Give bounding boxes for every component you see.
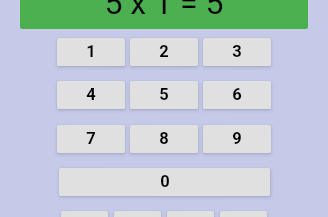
button[interactable]: 2 (130, 38, 198, 66)
button[interactable]: 5 (130, 81, 198, 109)
button[interactable]: 7 (57, 125, 125, 153)
button[interactable]: 6 (203, 81, 271, 109)
button[interactable]: 4 (57, 81, 125, 109)
staticText: 0 (160, 172, 170, 191)
staticText: 5 x 1 = 5 (104, 0, 224, 19)
button[interactable]: 1 (57, 38, 125, 66)
staticText: 5 (159, 85, 169, 104)
button[interactable]: 8 (130, 125, 198, 153)
staticText: 6 (232, 85, 242, 104)
staticText: 2 (159, 42, 169, 61)
staticText: 3 (232, 42, 242, 61)
staticText: 9 (232, 129, 242, 148)
button[interactable]: 0 (59, 168, 270, 196)
staticText: 4 (86, 85, 96, 104)
button[interactable]: 9 (203, 125, 271, 153)
staticText: 1 (86, 42, 96, 61)
button[interactable]: Question: 5 x 1 = 5 (20, 0, 308, 29)
staticText: 8 (159, 129, 169, 148)
button[interactable]: 3 (203, 38, 271, 66)
staticText: 7 (86, 129, 96, 148)
